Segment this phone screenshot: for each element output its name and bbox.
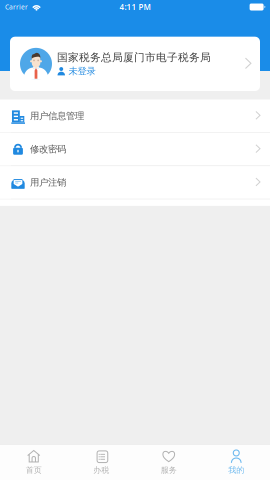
button[interactable]: 服务: [135, 444, 202, 480]
staticText: 未登录: [68, 65, 95, 77]
staticText: 修改密码: [30, 143, 66, 155]
button[interactable]: 我的: [202, 444, 270, 480]
button[interactable]: 首页: [0, 444, 67, 480]
staticText: 4:11 PM: [119, 2, 150, 12]
staticText: 我的: [228, 465, 244, 475]
staticText: 国家税务总局厦门市电子税务局: [57, 51, 211, 64]
staticText: 首页: [26, 465, 42, 475]
button[interactable]: 用户注销: [0, 166, 270, 199]
staticText: 办税: [93, 465, 109, 475]
button[interactable]: 国家税务总局厦门市电子税务局: [10, 37, 260, 91]
button[interactable]: 用户信息管理: [0, 99, 270, 132]
button[interactable]: 修改密码: [0, 133, 270, 165]
staticText: 用户注销: [30, 177, 66, 188]
button[interactable]: 办税: [67, 444, 135, 480]
staticText: Carrier: [5, 3, 28, 11]
staticText: 服务: [161, 465, 177, 475]
staticText: 用户信息管理: [30, 110, 84, 122]
